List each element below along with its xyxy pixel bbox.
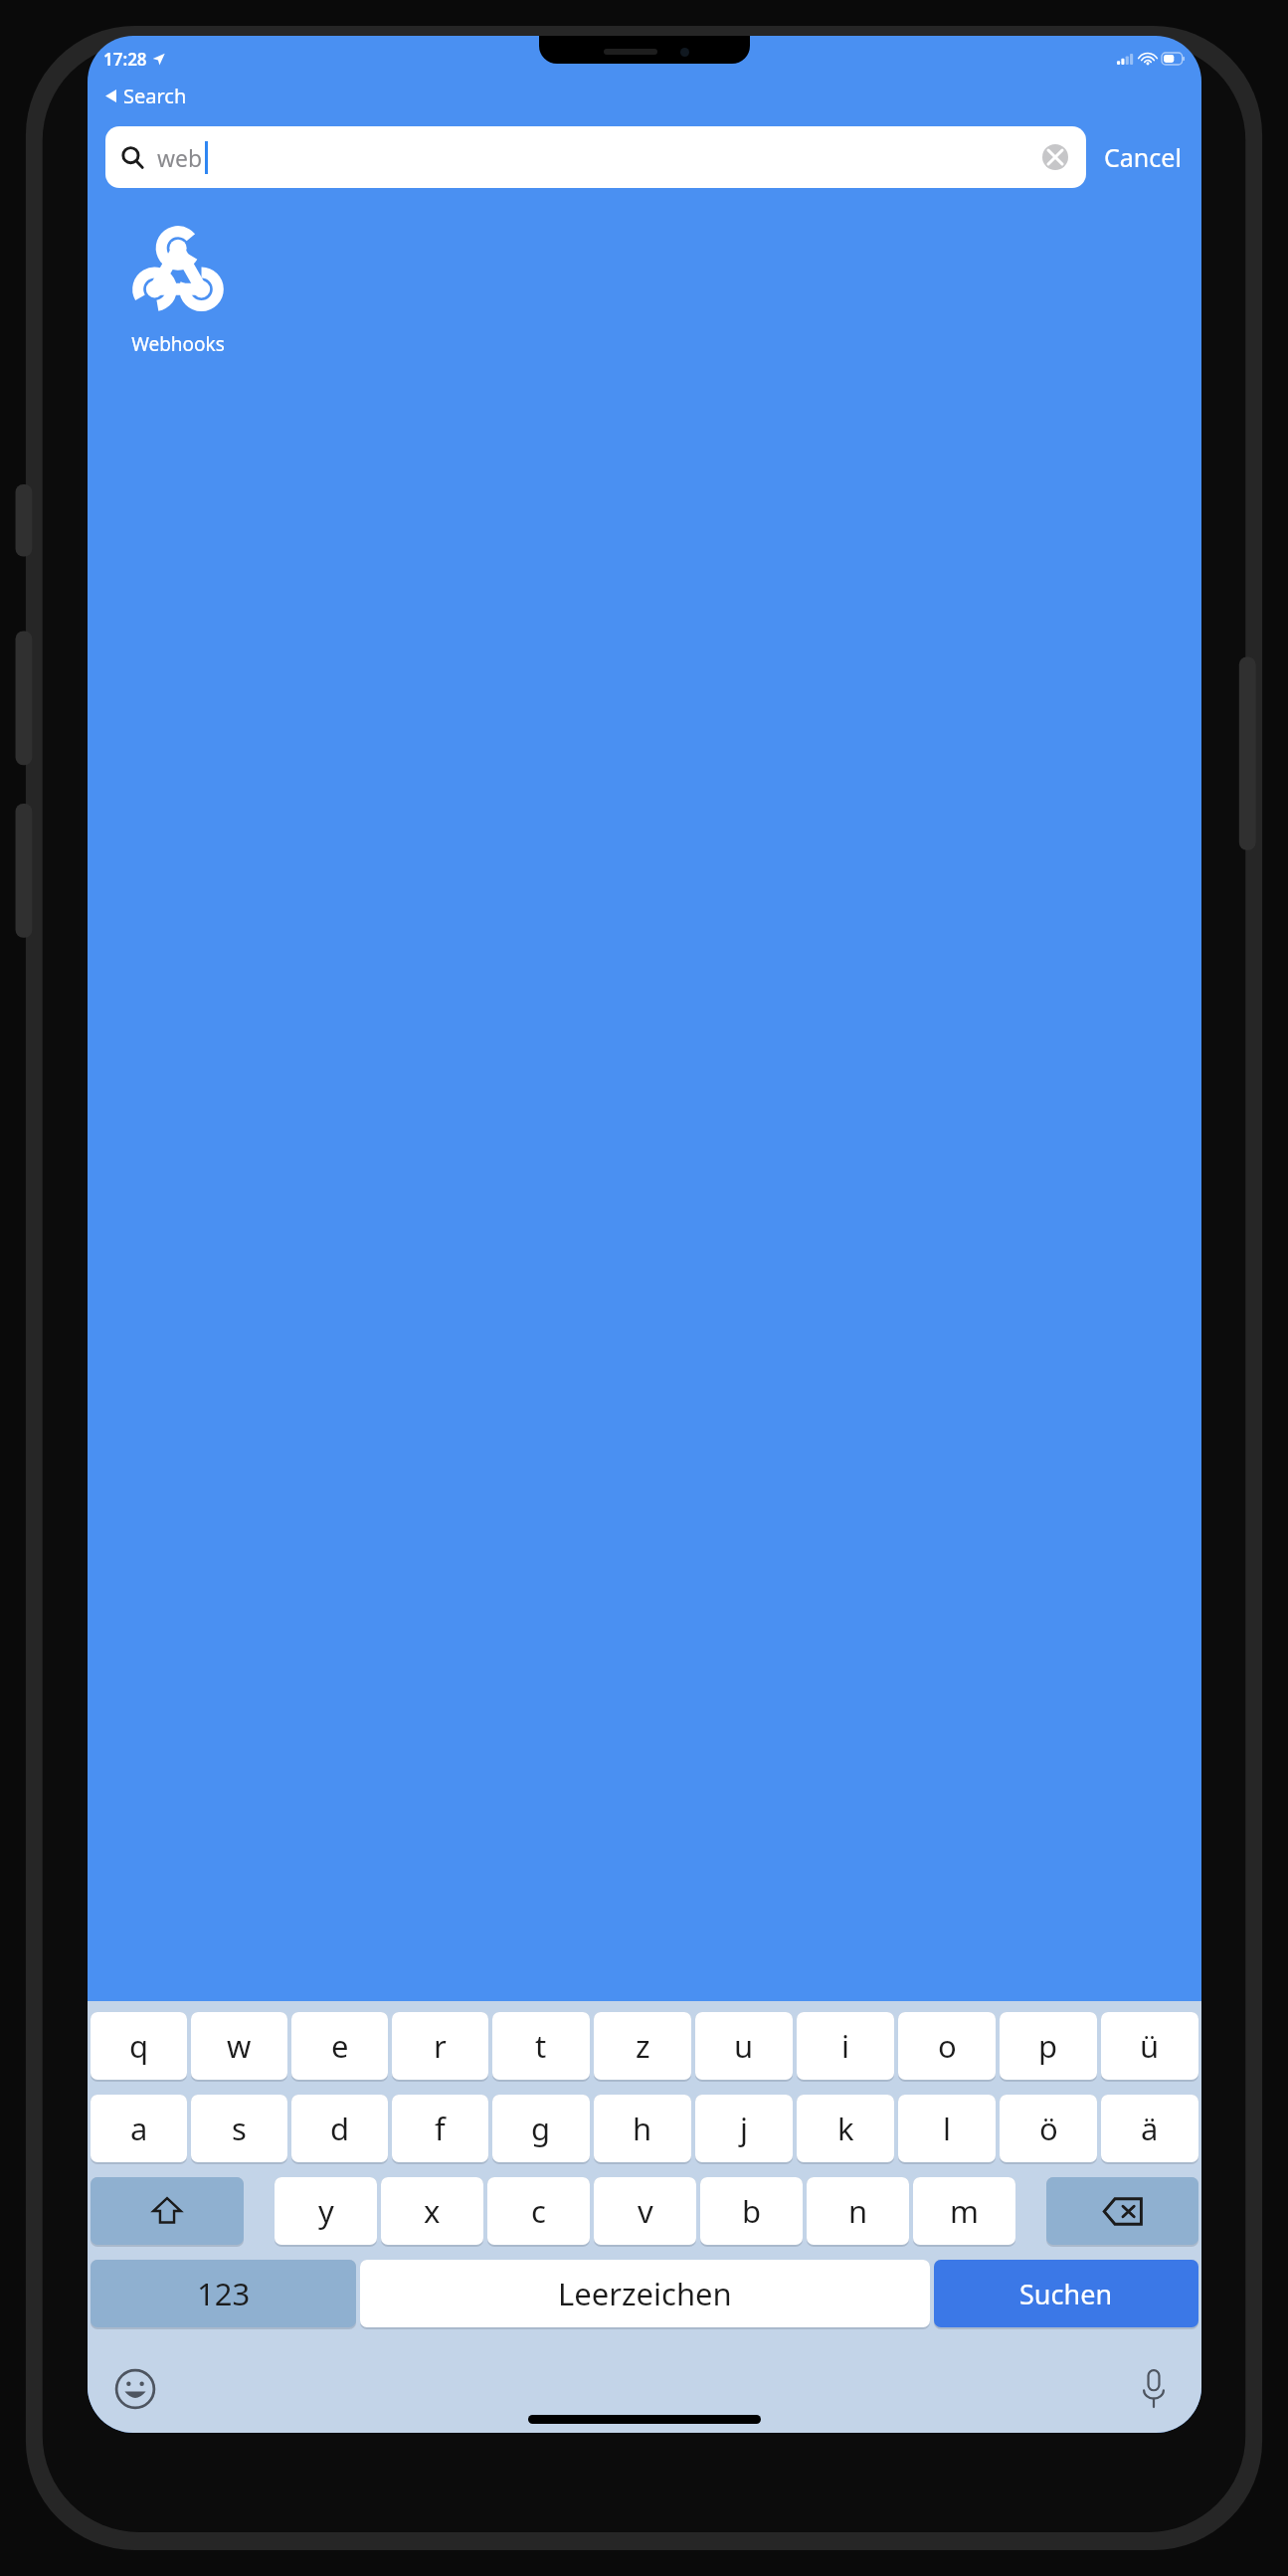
button[interactable]: Leerzeichen [360, 2260, 930, 2331]
button[interactable]: p [1000, 2012, 1097, 2084]
button[interactable]: f [392, 2095, 488, 2166]
button[interactable]: g [492, 2095, 590, 2166]
staticText: o [938, 2025, 957, 2067]
staticText: h [633, 2108, 652, 2149]
button[interactable]: Search [101, 80, 191, 112]
staticText: j [740, 2108, 748, 2149]
staticText: m [950, 2190, 979, 2232]
button[interactable]: z [594, 2012, 691, 2084]
button[interactable]: u [695, 2012, 793, 2084]
button[interactable]: Suchen [934, 2260, 1198, 2331]
button[interactable]: s [191, 2095, 287, 2166]
button[interactable]: n [807, 2177, 909, 2249]
staticText: Suchen [1019, 2276, 1113, 2312]
button[interactable]: d [291, 2095, 388, 2166]
staticText: a [130, 2108, 148, 2149]
button[interactable]: a [91, 2095, 187, 2166]
button[interactable]: y [275, 2177, 377, 2249]
button[interactable]: l [898, 2095, 996, 2166]
staticText: r [434, 2025, 447, 2067]
button[interactable]: web [105, 126, 1086, 188]
button[interactable]: k [797, 2095, 894, 2166]
button[interactable]: Clear text [1040, 142, 1070, 172]
staticText: v [638, 2190, 653, 2232]
staticText: c [531, 2190, 546, 2232]
staticText: l [943, 2108, 951, 2149]
staticText: k [837, 2108, 854, 2149]
button[interactable]: Cancel [1102, 134, 1184, 180]
staticText: 17:28 [103, 48, 147, 71]
staticText: ü [1140, 2025, 1160, 2067]
button[interactable]: h [594, 2095, 691, 2166]
button[interactable]: e [291, 2012, 388, 2084]
staticText: w [227, 2025, 252, 2067]
button[interactable]: ö [1000, 2095, 1097, 2166]
button[interactable]: w [191, 2012, 287, 2084]
button[interactable]: m [913, 2177, 1015, 2249]
button[interactable]: Shift [91, 2177, 244, 2249]
button[interactable]: i [797, 2012, 894, 2084]
staticText: 123 [197, 2273, 251, 2314]
staticText: f [435, 2108, 446, 2149]
staticText: web [157, 142, 203, 173]
staticText: x [424, 2190, 441, 2232]
button[interactable]: ü [1101, 2012, 1198, 2084]
button[interactable]: c [487, 2177, 590, 2249]
staticText: q [129, 2025, 149, 2067]
staticText: Search [123, 83, 187, 109]
button[interactable]: Dictation [1128, 2363, 1180, 2415]
staticText: p [1038, 2025, 1058, 2067]
staticText: y [318, 2190, 334, 2232]
button[interactable]: ä [1101, 2095, 1198, 2166]
button[interactable]: q [91, 2012, 187, 2084]
button[interactable]: v [594, 2177, 696, 2249]
staticText: z [636, 2025, 650, 2067]
button[interactable]: j [695, 2095, 793, 2166]
staticText: Webhooks [131, 331, 225, 357]
staticText: t [535, 2025, 547, 2067]
staticText: u [734, 2025, 754, 2067]
staticText: e [331, 2025, 349, 2067]
button[interactable]: x [381, 2177, 483, 2249]
button[interactable]: r [392, 2012, 488, 2084]
staticText: g [531, 2108, 551, 2149]
staticText: i [841, 2025, 849, 2067]
button[interactable]: 123 [91, 2260, 356, 2331]
staticText: ö [1039, 2108, 1058, 2149]
button[interactable]: t [492, 2012, 590, 2084]
staticText: d [330, 2108, 350, 2149]
staticText: n [848, 2190, 868, 2232]
staticText: ä [1141, 2108, 1159, 2149]
button[interactable]: Backspace [1046, 2177, 1198, 2249]
button[interactable]: Emoji keyboard [109, 2363, 161, 2415]
button[interactable]: o [898, 2012, 996, 2084]
staticText: s [232, 2108, 247, 2149]
staticText: b [742, 2190, 762, 2232]
staticText: Cancel [1104, 140, 1182, 174]
other: Webhooks app icon [130, 224, 226, 319]
button[interactable]: Webhooks app icon [117, 224, 239, 357]
button[interactable]: b [700, 2177, 803, 2249]
staticText: Leerzeichen [558, 2273, 732, 2314]
